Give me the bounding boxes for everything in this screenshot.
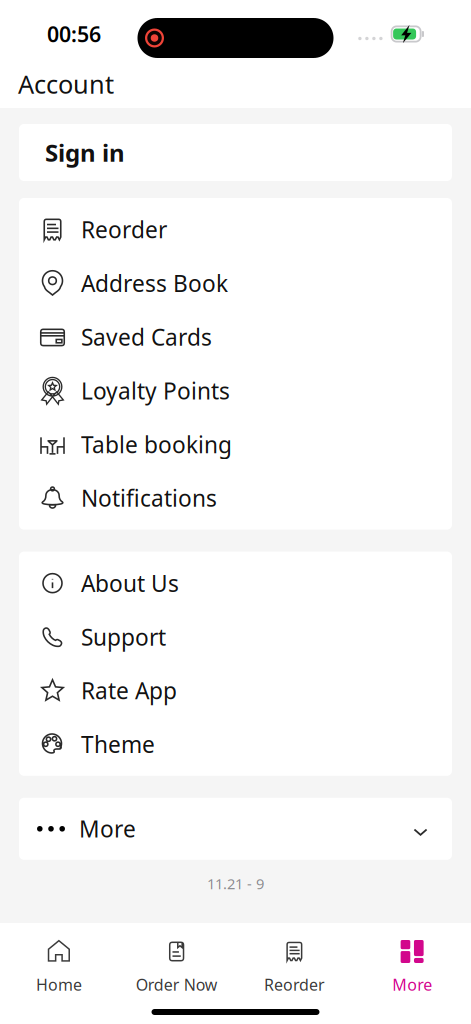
staticText: Address Book [81,268,228,298]
staticText: Notifications [81,483,217,513]
button[interactable]: Rate App [19,664,452,717]
staticText: Rate App [81,675,177,706]
button[interactable]: Address Book [19,256,452,310]
staticText: Order Now [136,974,218,995]
staticText: Theme [81,729,155,759]
button[interactable]: Order Now [118,923,236,995]
button[interactable]: Support [19,610,452,664]
button[interactable]: More [353,923,471,995]
button[interactable]: Notifications [19,471,452,525]
staticText: Sign in [45,137,125,168]
staticText: More [79,814,136,844]
staticText: 00:56 [47,20,101,48]
staticText: Loyalty Points [81,376,230,406]
button[interactable]: Loyalty Points [19,364,452,417]
button[interactable]: Reorder [19,203,452,256]
button[interactable]: Saved Cards [19,310,452,364]
button[interactable]: Sign in [19,124,452,181]
button[interactable]: Theme [19,717,452,771]
staticText: Reorder [264,974,325,995]
button[interactable]: Home [0,923,118,995]
staticText: Home [36,974,82,995]
staticText: About Us [81,568,179,598]
button[interactable]: Table booking [19,417,452,471]
staticText: Table booking [81,429,232,459]
staticText: Support [81,622,166,652]
button[interactable]: About Us [19,556,452,610]
staticText: 11.21 - 9 [207,874,264,893]
staticText: Reorder [81,214,167,245]
staticText: More [392,974,432,995]
button[interactable]: Reorder [235,923,353,995]
button[interactable]: More [19,798,452,860]
staticText: Account [18,67,114,101]
staticText: Saved Cards [81,322,212,352]
